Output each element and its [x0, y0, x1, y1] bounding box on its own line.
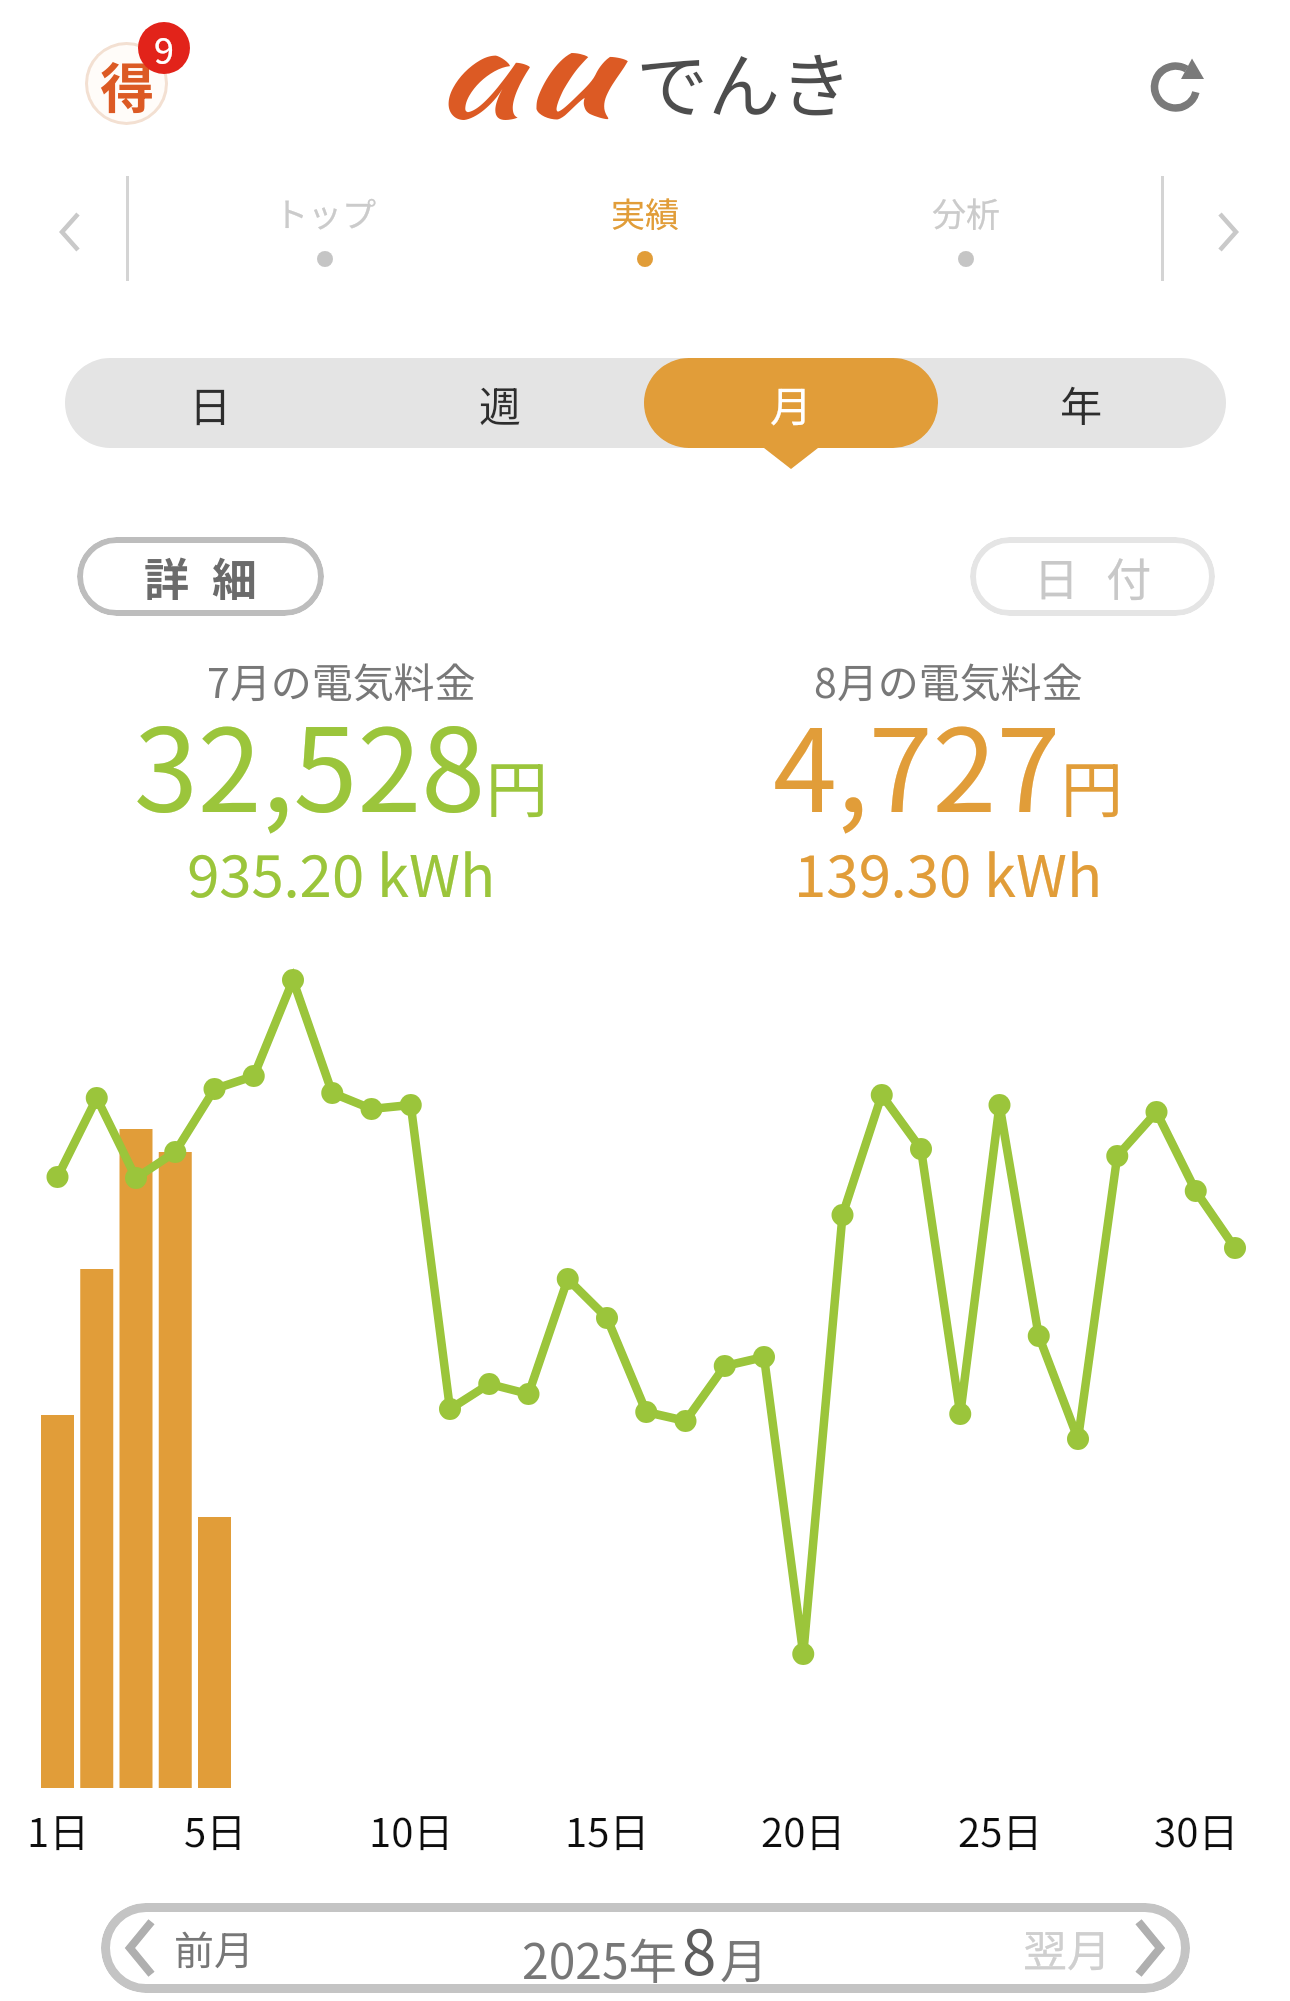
staticText: 20日 [761, 1801, 846, 1859]
staticText: 円 [1061, 740, 1124, 830]
staticText: 8月の電気料金 [814, 650, 1083, 706]
button[interactable]: 翌月 [769, 1903, 1190, 1993]
staticText: 1日 [27, 1801, 90, 1859]
button[interactable]: トップ [215, 176, 435, 281]
staticText: 15日 [565, 1801, 650, 1859]
staticText: 9 [154, 22, 174, 74]
staticText: トップ [274, 188, 376, 237]
staticText: 翌月 [1023, 1916, 1111, 1980]
button[interactable]: 詳 [77, 537, 324, 616]
staticText: 円 [486, 740, 549, 830]
button[interactable]: Next page [1199, 187, 1255, 277]
staticText: 32,528 [134, 679, 486, 839]
button[interactable]: 年 [936, 358, 1226, 448]
button[interactable]: Offers [88, 45, 165, 122]
button[interactable]: 日 [970, 537, 1215, 616]
staticText: 7月の電気料金 [207, 650, 476, 706]
staticText: 935.20 kWh [187, 830, 496, 900]
staticText: 年 [1060, 373, 1103, 434]
staticText: 5日 [184, 1801, 247, 1859]
button[interactable]: 実績 [535, 176, 755, 281]
staticText: 前月 [174, 1919, 254, 1977]
staticText: 月 [770, 373, 813, 434]
staticText: でんき [636, 28, 853, 132]
staticText: 日 [1034, 544, 1080, 609]
button[interactable]: 週 [355, 358, 645, 448]
staticText: 25日 [958, 1801, 1043, 1859]
button[interactable]: Previous page [42, 187, 98, 277]
staticText: 詳 [144, 544, 190, 609]
staticText: 8 [682, 1903, 717, 1993]
staticText: 2025年 [522, 1923, 677, 1993]
button[interactable]: 分析 [856, 176, 1076, 281]
staticText: 付 [1106, 544, 1152, 609]
staticText: 10日 [369, 1801, 454, 1859]
staticText: 月 [720, 1923, 769, 1993]
staticText: 30日 [1154, 1801, 1239, 1859]
button[interactable]: 日 [65, 358, 355, 448]
staticText: 得 [100, 45, 154, 122]
staticText: au [433, 0, 614, 166]
staticText: 細 [212, 544, 258, 609]
staticText: 139.30 kWh [794, 830, 1103, 900]
button[interactable]: 前月 [101, 1903, 522, 1993]
staticText: 日 [189, 373, 232, 434]
staticText: 分析 [932, 188, 1000, 237]
staticText: 実績 [611, 188, 679, 237]
staticText: 4,727 [773, 679, 1061, 839]
staticText: 週 [479, 373, 522, 434]
button[interactable]: Refresh [1136, 47, 1216, 127]
button[interactable]: 月 [644, 358, 938, 448]
